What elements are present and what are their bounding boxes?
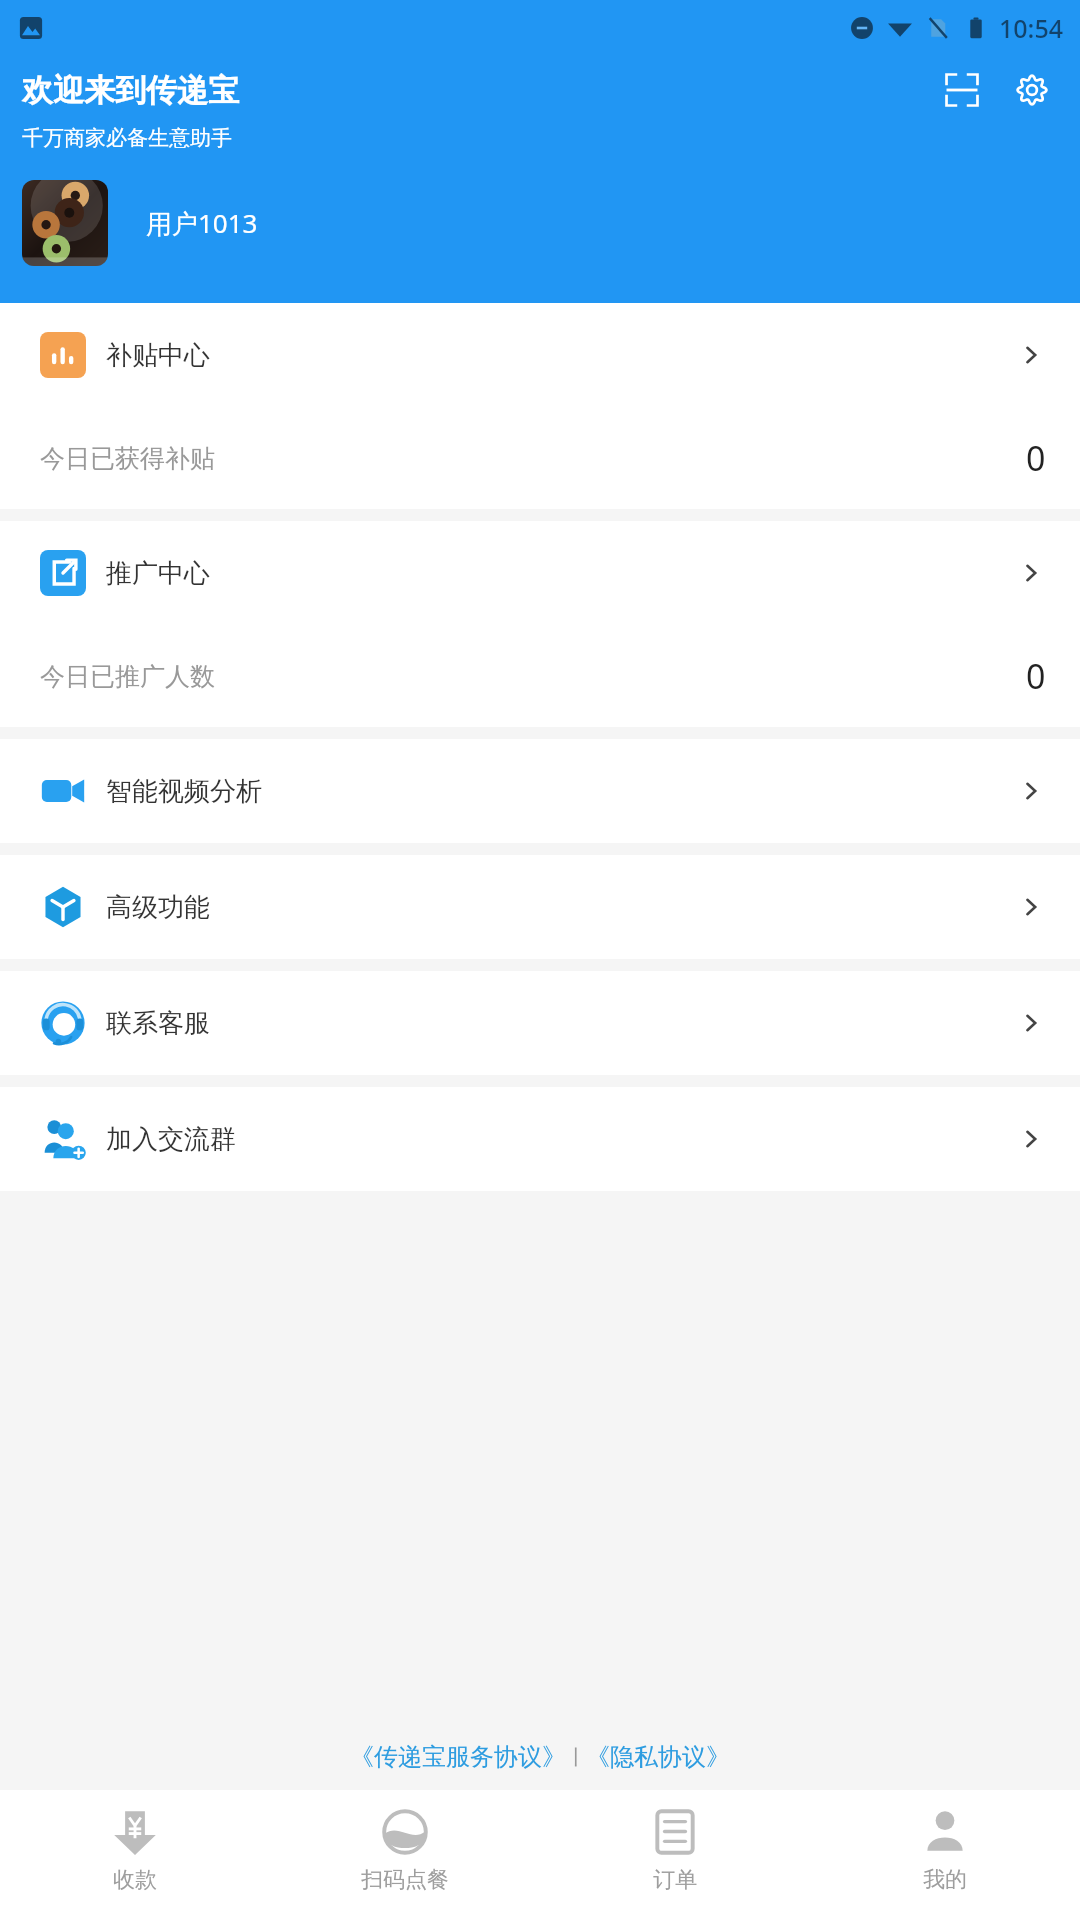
button[interactable]: 补贴中心: [0, 303, 1080, 407]
button[interactable]: Scan: [934, 62, 990, 118]
staticText: 智能视频分析: [106, 775, 262, 808]
staticText: 10:54: [999, 11, 1064, 45]
button[interactable]: 《隐私协议》: [586, 1742, 730, 1772]
button[interactable]: 加入交流群: [0, 1087, 1080, 1191]
staticText: 0: [1026, 653, 1046, 699]
button[interactable]: 收款: [0, 1790, 270, 1920]
staticText: 推广中心: [106, 557, 210, 590]
staticText: 加入交流群: [106, 1123, 236, 1156]
button[interactable]: 高级功能: [0, 855, 1080, 959]
button[interactable]: 智能视频分析: [0, 739, 1080, 843]
staticText: 扫码点餐: [361, 1866, 449, 1894]
button[interactable]: 用户1013: [22, 180, 258, 266]
button[interactable]: 推广中心: [0, 521, 1080, 625]
staticText: 我的: [923, 1866, 967, 1894]
staticText: 用户1013: [146, 205, 258, 241]
button[interactable]: 扫码点餐: [270, 1790, 540, 1920]
button[interactable]: 今日已推广人数: [0, 625, 1080, 727]
staticText: 今日已推广人数: [40, 661, 215, 692]
button[interactable]: 今日已获得补贴: [0, 407, 1080, 509]
staticText: 欢迎来到传递宝: [22, 71, 239, 110]
staticText: 联系客服: [106, 1007, 210, 1040]
staticText: 订单: [653, 1866, 697, 1894]
button[interactable]: 我的: [810, 1790, 1080, 1920]
button[interactable]: 联系客服: [0, 971, 1080, 1075]
staticText: 今日已获得补贴: [40, 443, 215, 474]
staticText: 收款: [113, 1866, 157, 1894]
staticText: 千万商家必备生意助手: [22, 125, 232, 151]
staticText: 补贴中心: [106, 339, 210, 372]
button[interactable]: 订单: [540, 1790, 810, 1920]
staticText: 0: [1026, 435, 1046, 481]
staticText: 丨: [566, 1745, 586, 1770]
staticText: 高级功能: [106, 891, 210, 924]
button[interactable]: 《传递宝服务协议》: [350, 1742, 566, 1772]
button[interactable]: Settings: [1004, 62, 1060, 118]
